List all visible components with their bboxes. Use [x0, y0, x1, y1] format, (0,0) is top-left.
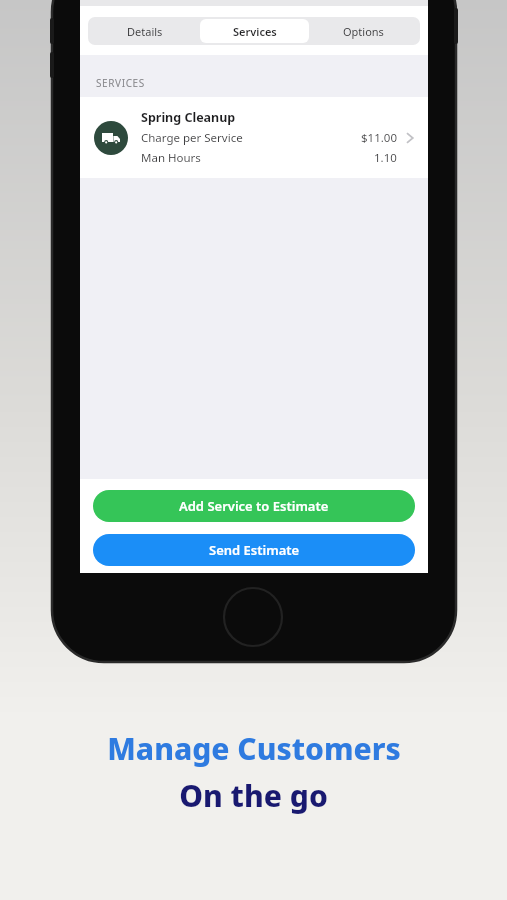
- staticText: Send Estimate: [209, 541, 300, 559]
- button[interactable]: Services: [200, 19, 309, 43]
- button[interactable]: Send Estimate: [93, 534, 415, 566]
- staticText: Add Service to Estimate: [179, 497, 329, 515]
- button[interactable]: Add Service to Estimate: [93, 490, 415, 522]
- button[interactable]: Details: [90, 19, 200, 43]
- staticText: Charge per Service: [141, 130, 243, 146]
- staticText: Spring Cleanup: [141, 109, 236, 126]
- button[interactable]: Options: [309, 19, 418, 43]
- staticText: $11.00: [361, 130, 397, 146]
- staticText: Services: [233, 24, 277, 39]
- staticText: SERVICES: [96, 76, 145, 90]
- staticText: On the go: [179, 775, 328, 816]
- staticText: Man Hours: [141, 150, 201, 166]
- button[interactable]: Spring Cleanup: [80, 97, 428, 178]
- staticText: Options: [343, 24, 384, 39]
- staticText: Manage Customers: [107, 728, 401, 769]
- staticText: Details: [127, 24, 163, 39]
- staticText: 1.10: [374, 150, 397, 166]
